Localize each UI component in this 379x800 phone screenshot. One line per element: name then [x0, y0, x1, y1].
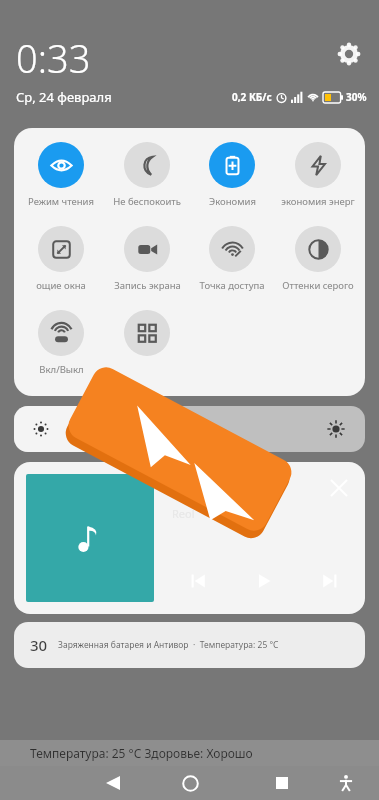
- staticText: Экономия: [209, 195, 256, 208]
- button[interactable]: [108, 310, 186, 356]
- button[interactable]: Home: [175, 768, 205, 798]
- staticText: 0:33: [16, 32, 91, 84]
- button[interactable]: Recents: [267, 768, 297, 798]
- button[interactable]: Back: [98, 768, 128, 798]
- staticText: Запись экрана: [114, 279, 181, 292]
- button[interactable]: Экономия: [193, 142, 271, 208]
- button[interactable]: Не беспокоить: [108, 142, 186, 208]
- staticText: Оттенки серого: [282, 279, 354, 292]
- staticText: 30: [30, 635, 48, 655]
- staticText: 毒占坂: [172, 484, 214, 502]
- button[interactable]: Brightness: [14, 406, 365, 452]
- button[interactable]: Вкл/Выкл: [22, 310, 100, 376]
- staticText: Reol: [172, 506, 195, 521]
- button[interactable]: Оттенки серого: [279, 226, 357, 292]
- button[interactable]: Next: [315, 566, 345, 596]
- staticText: экономия энерг: [281, 195, 355, 208]
- staticText: 0,2 КБ/c: [232, 90, 272, 104]
- staticText: Температура: 25 °C Здоровье: Хорошо: [30, 745, 253, 761]
- button[interactable]: экономия энерг: [279, 142, 357, 208]
- staticText: Заряженная батарея и Антивор · Температу…: [58, 639, 279, 651]
- button[interactable]: Settings: [333, 38, 365, 70]
- button[interactable]: Запись экрана: [108, 226, 186, 292]
- button[interactable]: Close: [325, 474, 353, 502]
- staticText: 30%: [346, 90, 367, 104]
- button[interactable]: Точка доступа: [193, 226, 271, 292]
- staticText: Точка доступа: [199, 279, 265, 292]
- staticText: Вкл/Выкл: [39, 363, 84, 376]
- staticText: Ср, 24 февраля: [16, 88, 112, 106]
- staticText: Не беспокоить: [113, 195, 181, 208]
- button[interactable]: Accessibility: [331, 768, 361, 798]
- staticText: ощие окна: [36, 279, 86, 292]
- staticText: Режим чтения: [28, 195, 94, 208]
- button[interactable]: ощие окна: [22, 226, 100, 292]
- button[interactable]: Режим чтения: [22, 142, 100, 208]
- button[interactable]: Previous: [183, 566, 213, 596]
- button[interactable]: 30: [14, 622, 365, 668]
